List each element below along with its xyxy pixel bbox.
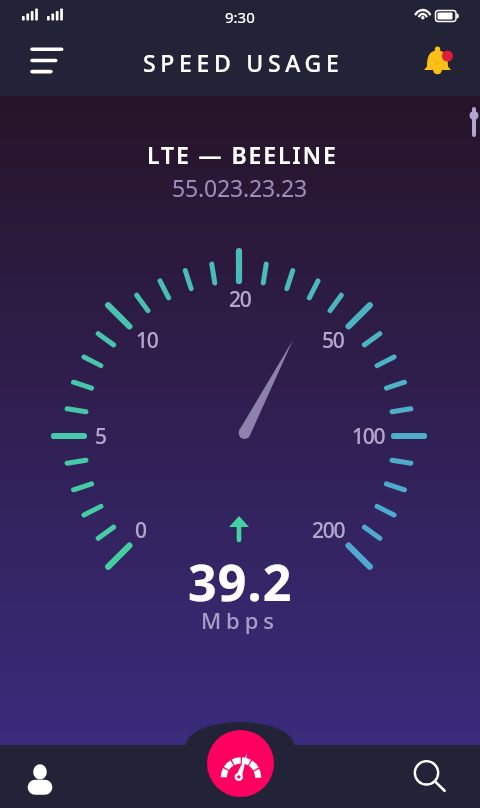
staticText: 100 [352, 422, 385, 451]
staticText: LTE — BEELINE [147, 139, 338, 170]
button[interactable]: Profile [12, 749, 68, 805]
staticText: 5 [95, 422, 106, 451]
staticText: 20 [229, 285, 251, 314]
staticText: 39.2 [188, 548, 293, 616]
staticText: SPEED USAGE [143, 47, 344, 78]
staticText: Mbps [201, 605, 279, 635]
staticText: 200 [312, 516, 345, 545]
staticText: 0 [135, 516, 146, 545]
button[interactable]: Notifications [412, 36, 468, 92]
button[interactable]: Search [403, 749, 459, 805]
staticText: 10 [136, 326, 158, 355]
staticText: 55.023.23.23 [172, 172, 308, 203]
staticText: 9:30 [225, 7, 255, 27]
staticText: 50 [322, 326, 344, 355]
button[interactable]: Menu [6, 36, 62, 92]
button[interactable]: Start speed test [207, 730, 274, 797]
